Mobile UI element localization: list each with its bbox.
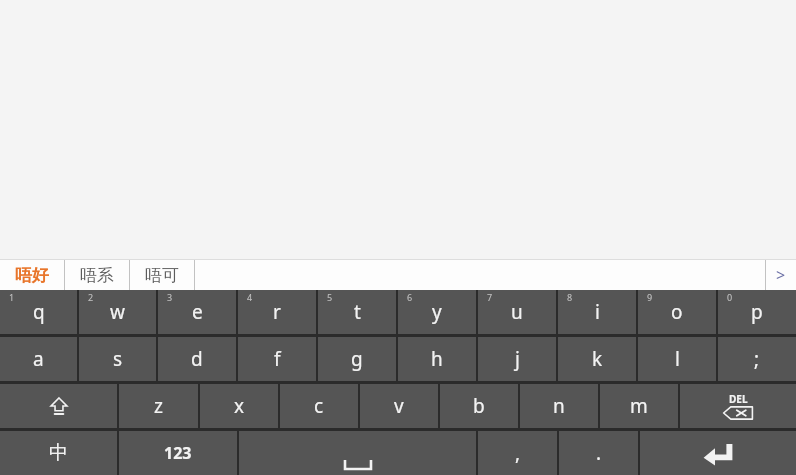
button[interactable]: 6	[398, 290, 476, 334]
button[interactable]: a	[0, 337, 77, 381]
button[interactable]: Shift	[0, 384, 117, 428]
staticText: j	[515, 346, 520, 372]
staticText: m	[630, 393, 648, 419]
button[interactable]: 8	[558, 290, 636, 334]
button[interactable]: k	[558, 337, 636, 381]
staticText: w	[110, 299, 125, 325]
staticText: 唔可	[145, 265, 179, 286]
button[interactable]: Delete	[680, 384, 796, 428]
button[interactable]: x	[200, 384, 278, 428]
staticText: i	[595, 299, 600, 325]
staticText: DEL	[729, 392, 748, 406]
staticText: e	[192, 299, 203, 325]
button[interactable]: ,	[478, 431, 557, 475]
button[interactable]: m	[600, 384, 678, 428]
staticText: g	[351, 346, 363, 372]
staticText: r	[273, 299, 281, 325]
button[interactable]: g	[318, 337, 396, 381]
button[interactable]: c	[280, 384, 358, 428]
button[interactable]: 唔系	[65, 260, 129, 290]
button[interactable]: 3	[158, 290, 236, 334]
staticText: b	[473, 393, 485, 419]
button[interactable]: 中	[0, 431, 117, 475]
staticText: 0	[727, 291, 733, 303]
staticText: l	[675, 346, 680, 372]
staticText: ;	[754, 346, 760, 372]
staticText: f	[274, 346, 281, 372]
button[interactable]: 1	[0, 290, 77, 334]
button[interactable]: ;	[718, 337, 796, 381]
button[interactable]: 2	[79, 290, 156, 334]
button[interactable]: More candidates	[766, 260, 796, 290]
button[interactable]: 9	[638, 290, 716, 334]
staticText: z	[154, 393, 163, 419]
staticText: 4	[247, 291, 253, 303]
staticText: 1	[9, 291, 15, 303]
staticText: 唔好	[15, 265, 49, 286]
button[interactable]: 5	[318, 290, 396, 334]
button[interactable]: z	[119, 384, 198, 428]
staticText: p	[751, 299, 763, 325]
staticText: a	[33, 346, 44, 372]
staticText: .	[596, 440, 602, 466]
staticText: ,	[515, 440, 521, 466]
button[interactable]: s	[79, 337, 156, 381]
staticText: 中	[49, 441, 68, 465]
staticText: q	[33, 299, 45, 325]
button[interactable]: 唔好	[0, 260, 64, 290]
button[interactable]: 0	[718, 290, 796, 334]
button[interactable]: n	[520, 384, 598, 428]
staticText: 2	[88, 291, 94, 303]
staticText: c	[314, 393, 324, 419]
staticText: d	[191, 346, 203, 372]
staticText: 3	[167, 291, 173, 303]
staticText: u	[511, 299, 523, 325]
button[interactable]: j	[478, 337, 556, 381]
button[interactable]: b	[440, 384, 518, 428]
staticText: o	[671, 299, 683, 325]
button[interactable]: d	[158, 337, 236, 381]
button[interactable]: 123	[119, 431, 237, 475]
staticText: >	[776, 264, 786, 286]
staticText: s	[113, 346, 123, 372]
button[interactable]: 唔可	[130, 260, 194, 290]
staticText: y	[432, 299, 442, 325]
staticText: v	[394, 393, 404, 419]
button[interactable]: .	[559, 431, 638, 475]
staticText: 123	[164, 442, 192, 464]
staticText: x	[234, 393, 245, 419]
staticText: 5	[327, 291, 333, 303]
staticText: 唔系	[80, 265, 114, 286]
staticText: k	[592, 346, 603, 372]
button[interactable]: 4	[238, 290, 316, 334]
staticText: 7	[487, 291, 493, 303]
staticText: 9	[647, 291, 653, 303]
button[interactable]: 7	[478, 290, 556, 334]
button[interactable]: v	[360, 384, 438, 428]
button[interactable]: Space	[239, 431, 476, 475]
staticText: h	[431, 346, 443, 372]
button[interactable]: l	[638, 337, 716, 381]
staticText: 6	[407, 291, 413, 303]
button[interactable]: f	[238, 337, 316, 381]
staticText: n	[553, 393, 565, 419]
staticText: 8	[567, 291, 573, 303]
staticText: t	[354, 299, 361, 325]
button[interactable]: Enter	[640, 431, 796, 475]
button[interactable]: h	[398, 337, 476, 381]
